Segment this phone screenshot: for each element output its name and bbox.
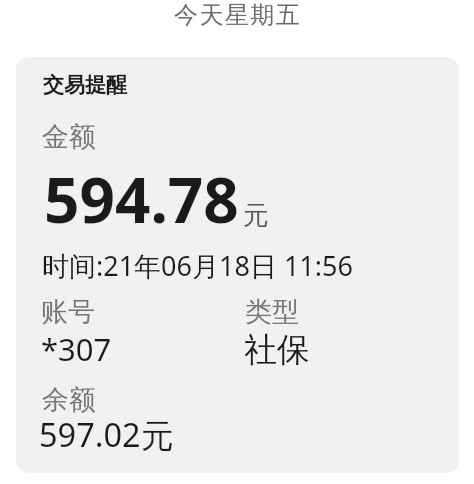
staticText: *307 (41, 328, 112, 370)
staticText: 类型 (245, 295, 299, 329)
staticText: 余额 (42, 383, 96, 417)
staticText: 时间:21年06月18日 11:56 (42, 247, 353, 284)
staticText: 今天星期五 (174, 0, 302, 30)
staticText: 597.02元 (39, 412, 174, 456)
button[interactable]: 今天星期五 (0, 0, 474, 50)
staticText: 交易提醒 (43, 72, 127, 98)
staticText: 594.78 (44, 157, 239, 241)
staticText: 元 (243, 199, 269, 232)
staticText: 金额 (42, 120, 96, 154)
button[interactable]: 交易提醒卡片 (16, 57, 459, 473)
staticText: 账号 (41, 295, 95, 329)
staticText: 社保 (244, 329, 310, 371)
